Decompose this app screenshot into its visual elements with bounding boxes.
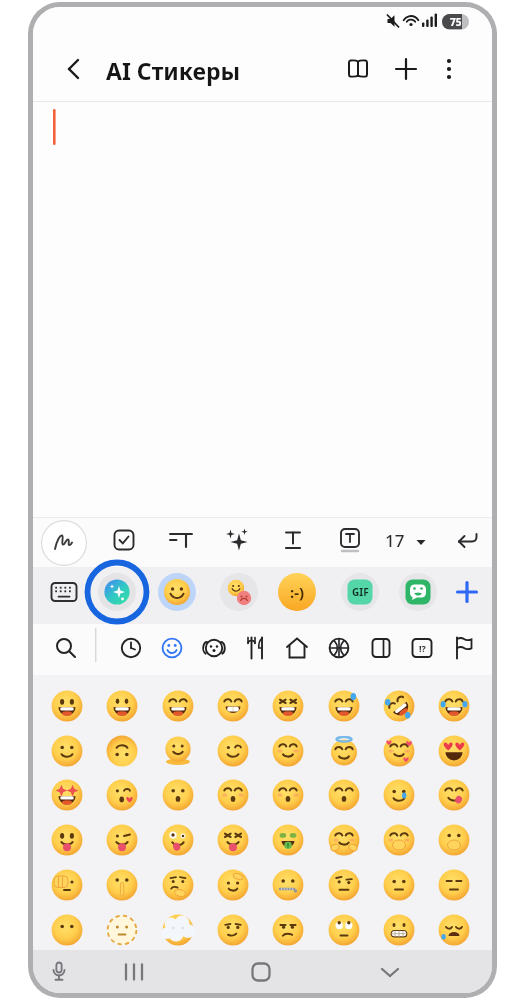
button[interactable]	[163, 870, 193, 900]
button[interactable]	[345, 56, 371, 82]
button[interactable]	[52, 825, 82, 855]
staticText: :-)	[290, 582, 305, 602]
button[interactable]	[52, 736, 82, 766]
button[interactable]	[439, 870, 469, 900]
button[interactable]	[52, 915, 82, 945]
button[interactable]	[439, 915, 469, 945]
button[interactable]	[384, 825, 414, 855]
staticText: 17	[385, 529, 405, 552]
button[interactable]	[273, 915, 303, 945]
button[interactable]	[218, 691, 248, 721]
button[interactable]	[384, 780, 414, 810]
button[interactable]	[244, 635, 268, 661]
button[interactable]	[218, 870, 248, 900]
staticText: GIF	[352, 585, 369, 599]
button[interactable]	[393, 56, 419, 82]
button[interactable]	[273, 870, 303, 900]
staticText: 75	[450, 15, 462, 29]
button[interactable]	[163, 780, 193, 810]
button[interactable]	[61, 56, 87, 82]
button[interactable]: :-)	[277, 572, 317, 612]
button[interactable]	[50, 580, 78, 604]
button[interactable]	[163, 915, 193, 945]
button[interactable]	[107, 915, 137, 945]
button[interactable]	[284, 636, 310, 660]
button[interactable]	[273, 825, 303, 855]
button[interactable]	[112, 528, 136, 552]
button[interactable]	[52, 691, 82, 721]
button[interactable]	[201, 636, 227, 660]
button[interactable]	[452, 635, 476, 661]
button[interactable]	[439, 825, 469, 855]
button[interactable]	[338, 527, 362, 553]
button[interactable]: GIF	[340, 572, 380, 612]
button[interactable]	[224, 527, 250, 553]
button[interactable]: !?	[410, 636, 434, 660]
button[interactable]	[47, 960, 71, 984]
button[interactable]	[439, 780, 469, 810]
button[interactable]	[273, 691, 303, 721]
button[interactable]: AI Стикеры	[106, 55, 241, 86]
button[interactable]	[41, 520, 87, 566]
button[interactable]	[163, 736, 193, 766]
button[interactable]	[378, 962, 402, 982]
button[interactable]	[52, 780, 82, 810]
button[interactable]	[439, 691, 469, 721]
button[interactable]	[273, 736, 303, 766]
button[interactable]	[163, 825, 193, 855]
button[interactable]	[107, 736, 137, 766]
button[interactable]	[84, 559, 150, 625]
button[interactable]	[52, 870, 82, 900]
button[interactable]	[329, 825, 359, 855]
button[interactable]	[168, 528, 194, 552]
button[interactable]	[369, 636, 393, 660]
button[interactable]	[329, 691, 359, 721]
button[interactable]	[281, 528, 305, 552]
staticText: !?	[419, 642, 426, 654]
button[interactable]	[439, 736, 469, 766]
button[interactable]	[107, 780, 137, 810]
button[interactable]	[121, 962, 147, 982]
button[interactable]	[160, 636, 184, 660]
button[interactable]	[107, 870, 137, 900]
button[interactable]	[163, 691, 193, 721]
button[interactable]: 17	[385, 526, 433, 554]
button[interactable]	[107, 825, 137, 855]
button[interactable]	[250, 961, 272, 983]
button[interactable]	[455, 528, 481, 552]
button[interactable]	[219, 572, 259, 612]
button[interactable]	[384, 915, 414, 945]
button[interactable]	[329, 915, 359, 945]
button[interactable]	[327, 636, 351, 660]
button[interactable]	[53, 635, 79, 661]
button[interactable]	[329, 870, 359, 900]
button[interactable]	[384, 870, 414, 900]
button[interactable]	[273, 780, 303, 810]
button[interactable]	[384, 691, 414, 721]
button[interactable]	[329, 736, 359, 766]
button[interactable]	[398, 572, 438, 612]
button[interactable]	[329, 780, 359, 810]
button[interactable]	[218, 736, 248, 766]
button[interactable]	[218, 825, 248, 855]
button[interactable]	[436, 56, 462, 82]
button[interactable]	[454, 579, 480, 605]
button[interactable]	[107, 691, 137, 721]
button[interactable]	[157, 572, 197, 612]
button[interactable]	[119, 636, 143, 660]
button[interactable]	[218, 915, 248, 945]
button[interactable]	[384, 736, 414, 766]
button[interactable]	[218, 780, 248, 810]
